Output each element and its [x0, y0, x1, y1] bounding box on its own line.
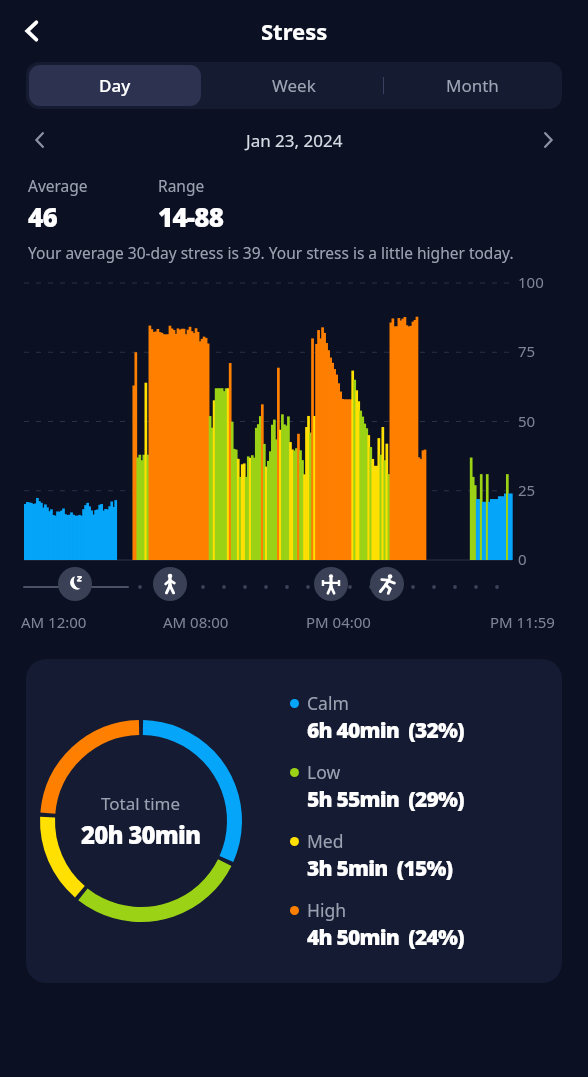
button[interactable]: Walking — [153, 567, 187, 601]
button[interactable]: Back — [10, 9, 54, 53]
staticText: Calm — [307, 691, 349, 715]
button[interactable]: Med — [290, 829, 552, 883]
staticText: PM 11:59 — [490, 612, 555, 632]
staticText: 46 — [28, 199, 57, 234]
button[interactable]: Weight training — [314, 567, 348, 601]
staticText: 0 — [518, 549, 527, 569]
staticText: Day — [99, 74, 131, 97]
staticText: Average — [28, 175, 88, 196]
staticText: Total time — [101, 792, 181, 815]
staticText: Week — [272, 74, 316, 97]
staticText: 25 — [518, 480, 536, 500]
button[interactable]: Sleep — [58, 567, 92, 601]
button[interactable]: Previous day — [22, 122, 58, 158]
button[interactable]: Next day — [530, 122, 566, 158]
button[interactable]: Week — [207, 65, 380, 106]
button[interactable]: Low — [290, 760, 552, 814]
staticText: Month — [446, 74, 499, 97]
staticText: 3h 5min (15%) — [307, 854, 453, 883]
staticText: Jan 23, 2024 — [246, 129, 343, 152]
staticText: 50 — [518, 411, 536, 431]
button[interactable]: High — [290, 898, 552, 952]
staticText: 20h 30min — [81, 818, 201, 851]
button[interactable]: Month — [386, 65, 559, 106]
staticText: AM 08:00 — [163, 612, 229, 632]
staticText: Range — [158, 175, 205, 196]
staticText: 6h 40min (32%) — [307, 716, 464, 745]
staticText: PM 04:00 — [306, 612, 371, 632]
staticText: 100 — [518, 272, 544, 292]
button[interactable]: Total time — [26, 659, 562, 983]
button[interactable]: Running — [370, 567, 404, 601]
staticText: High — [307, 898, 347, 922]
staticText: 5h 55min (29%) — [307, 785, 464, 814]
staticText: 4h 50min (24%) — [307, 923, 464, 952]
staticText: 14-88 — [158, 199, 224, 234]
staticText: Stress — [261, 16, 328, 46]
staticText: Your average 30-day stress is 39. Your s… — [28, 242, 514, 263]
staticText: 75 — [518, 341, 536, 361]
button[interactable]: Day — [29, 65, 201, 106]
staticText: Low — [307, 760, 341, 784]
staticText: AM 12:00 — [21, 612, 87, 632]
button[interactable]: Calm — [290, 691, 552, 745]
staticText: Med — [307, 829, 344, 853]
